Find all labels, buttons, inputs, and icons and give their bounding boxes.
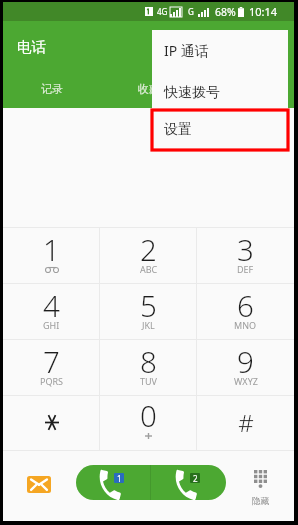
staticText: 记录 <box>41 82 63 96</box>
button[interactable]: 收藏 <box>100 74 197 104</box>
staticText: 9 <box>237 341 254 381</box>
staticText: ABC <box>140 263 158 275</box>
button[interactable]: 9 <box>197 340 294 395</box>
button[interactable]: Messages <box>12 453 66 515</box>
button[interactable]: IP 通话 <box>152 30 288 70</box>
button[interactable]: # <box>197 396 294 450</box>
button[interactable]: 2 <box>100 228 197 283</box>
button[interactable] <box>3 396 100 450</box>
staticText: IP 通话 <box>164 41 209 60</box>
staticText: JKL <box>142 319 155 331</box>
staticText: 4G <box>157 6 168 17</box>
button[interactable]: Call with SIM 1 <box>76 465 150 500</box>
staticText: 1 <box>117 473 122 483</box>
button[interactable]: 0 <box>100 396 197 450</box>
staticText: TUV <box>140 375 157 387</box>
staticText: # <box>238 406 254 439</box>
button[interactable]: 快速拨号 <box>152 73 288 112</box>
button[interactable]: 5 <box>100 284 197 339</box>
staticText: MNO <box>234 319 257 331</box>
button[interactable]: 8 <box>100 340 197 395</box>
staticText: 隐藏 <box>252 496 269 507</box>
staticText: 设置 <box>164 121 192 139</box>
staticText: 68% <box>215 5 236 19</box>
button[interactable]: 记录 <box>3 74 100 104</box>
staticText: GHI <box>43 319 60 331</box>
button[interactable]: 1 <box>3 228 100 283</box>
button[interactable]: 7 <box>3 340 100 395</box>
button[interactable]: 联系人 <box>197 74 294 104</box>
staticText: 3 <box>237 229 254 269</box>
button[interactable]: 4 <box>3 284 100 339</box>
button[interactable]: 6 <box>197 284 294 339</box>
staticText: WXYZ <box>234 375 258 387</box>
button[interactable]: 3 <box>197 228 294 283</box>
button[interactable]: Hide keypad <box>233 460 287 512</box>
staticText: 2 <box>193 473 198 483</box>
staticText: 电话 <box>17 38 46 56</box>
button[interactable]: 设置 <box>152 110 288 150</box>
staticText: 8 <box>140 341 157 381</box>
staticText: 收藏 <box>138 82 160 96</box>
staticText: 4 <box>43 285 60 325</box>
staticText: 1 <box>43 229 60 269</box>
staticText: 0 <box>140 395 157 435</box>
staticText: 2 <box>140 229 157 269</box>
staticText: DEF <box>237 263 254 275</box>
staticText: PQRS <box>40 375 64 387</box>
staticText: 5 <box>140 285 157 325</box>
button[interactable]: Call with SIM 2 <box>151 465 226 500</box>
staticText: 7 <box>43 341 60 381</box>
staticText: 10:14 <box>249 4 278 19</box>
staticText: G <box>188 6 194 17</box>
staticText: 快速拨号 <box>164 84 220 102</box>
staticText: 6 <box>237 285 254 325</box>
